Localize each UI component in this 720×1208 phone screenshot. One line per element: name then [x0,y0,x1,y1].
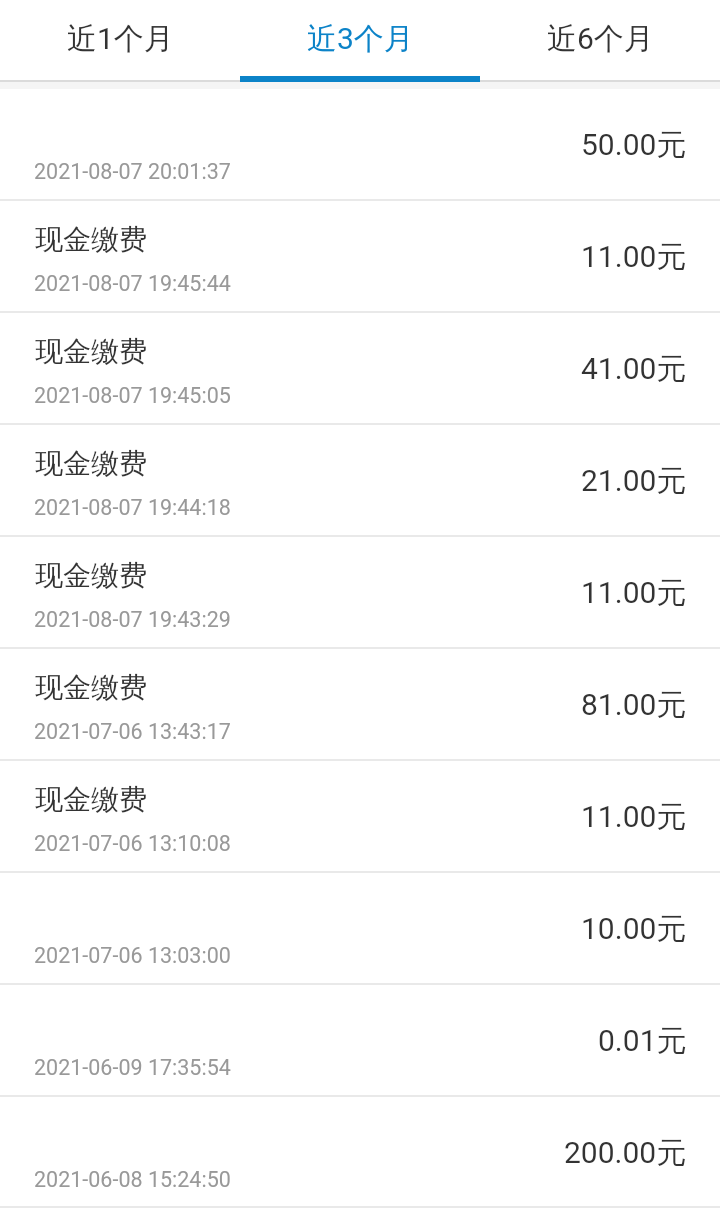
button[interactable]: 现金缴费 2021-08-07 19:45:44 11.00元 [0,201,720,313]
button[interactable]: 现金缴费 2021-08-07 19:44:18 21.00元 [0,425,720,537]
staticText: 10.00元 [581,910,687,948]
staticText: 现金缴费 [35,334,147,369]
staticText: 2021-07-06 13:43:17 [34,719,231,744]
button[interactable]: 近1个月 [0,0,240,80]
button[interactable]: 近3个月 [240,0,480,80]
staticText: 现金缴费 [35,558,147,593]
staticText: 2021-08-07 19:45:05 [34,383,231,408]
button[interactable]: 2021-06-08 15:24:50 200.00元 [0,1097,720,1208]
staticText: 2021-08-07 20:01:37 [34,159,231,184]
staticText: 近1个月 [67,20,174,58]
staticText: 现金缴费 [35,446,147,481]
staticText: 近6个月 [547,20,654,58]
button[interactable]: 现金缴费 2021-07-06 13:43:17 81.00元 [0,649,720,761]
button[interactable]: 2021-07-06 13:03:00 10.00元 [0,873,720,985]
button[interactable]: 2021-06-09 17:35:54 0.01元 [0,985,720,1097]
staticText: 21.00元 [581,462,687,500]
button[interactable]: 2021-08-07 20:01:37 50.00元 [0,89,720,201]
staticText: 现金缴费 [35,670,147,705]
staticText: 2021-07-06 13:03:00 [34,943,231,968]
button[interactable]: 近6个月 [480,0,720,80]
staticText: 2021-08-07 19:45:44 [34,271,231,296]
button[interactable]: 现金缴费 2021-08-07 19:43:29 11.00元 [0,537,720,649]
staticText: 2021-07-06 13:10:08 [34,831,231,856]
staticText: 2021-06-09 17:35:54 [34,1055,231,1080]
staticText: 2021-08-07 19:44:18 [34,495,231,520]
staticText: 近3个月 [307,20,414,58]
staticText: 200.00元 [564,1134,687,1172]
staticText: 现金缴费 [35,782,147,817]
staticText: 11.00元 [581,238,687,276]
button[interactable]: 现金缴费 2021-07-06 13:10:08 11.00元 [0,761,720,873]
staticText: 0.01元 [598,1022,687,1060]
staticText: 2021-08-07 19:43:29 [34,607,231,632]
staticText: 现金缴费 [35,222,147,257]
staticText: 41.00元 [581,350,687,388]
button[interactable]: 现金缴费 2021-08-07 19:45:05 41.00元 [0,313,720,425]
staticText: 11.00元 [581,798,687,836]
staticText: 50.00元 [581,126,687,164]
staticText: 11.00元 [581,574,687,612]
staticText: 2021-06-08 15:24:50 [34,1167,231,1192]
staticText: 81.00元 [581,686,687,724]
